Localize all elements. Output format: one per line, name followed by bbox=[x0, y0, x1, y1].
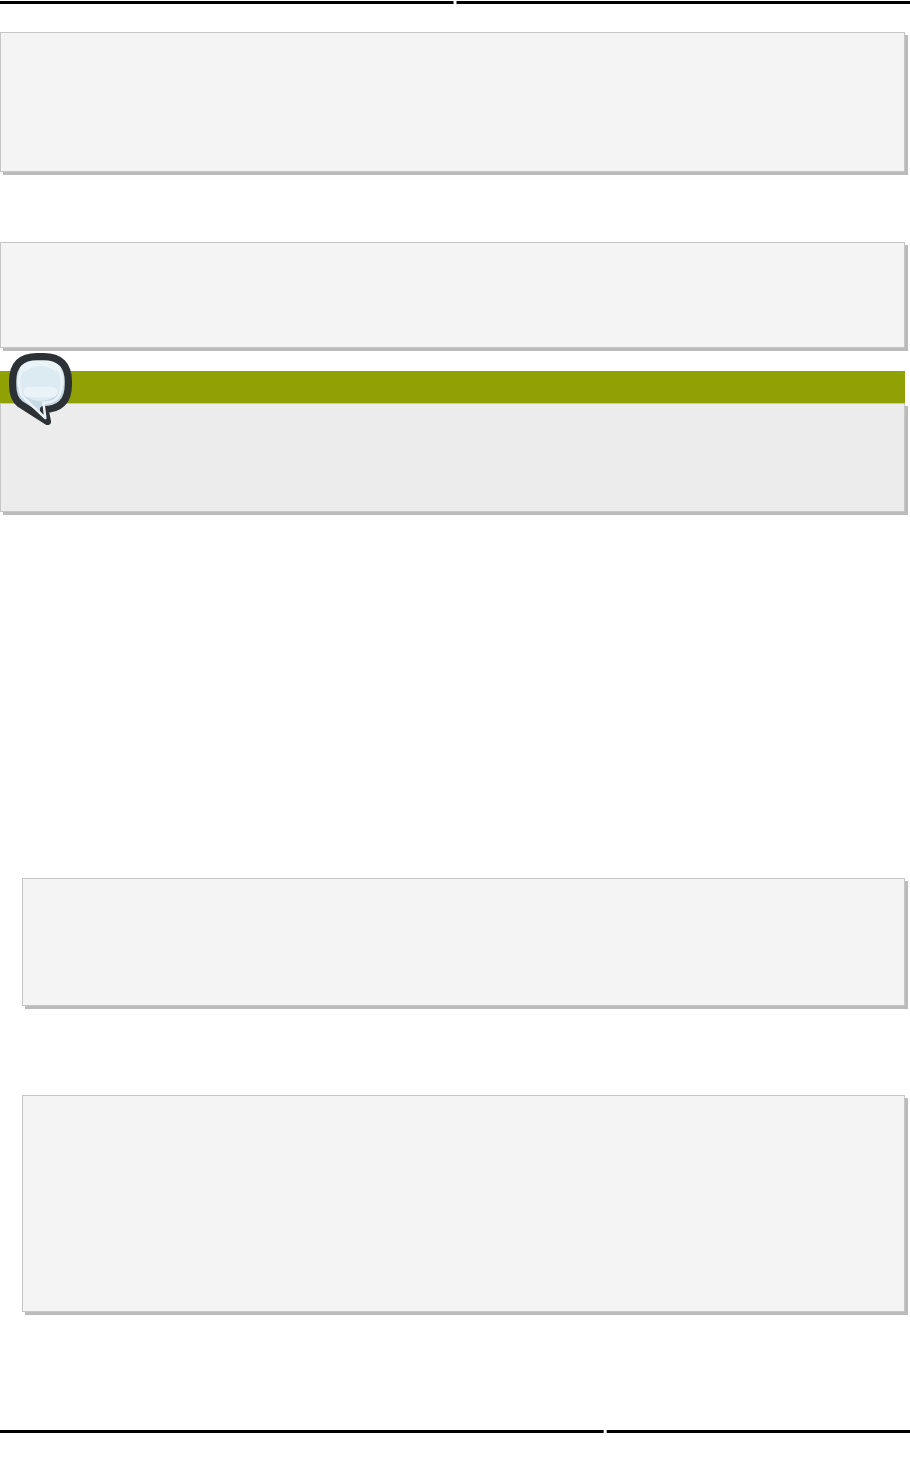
other: Note bbox=[9, 353, 72, 425]
button[interactable] bbox=[22, 1095, 905, 1312]
button[interactable] bbox=[1, 404, 904, 511]
button[interactable] bbox=[0, 242, 905, 348]
button[interactable] bbox=[22, 878, 905, 1006]
button[interactable] bbox=[0, 32, 905, 172]
button[interactable] bbox=[0, 371, 905, 403]
